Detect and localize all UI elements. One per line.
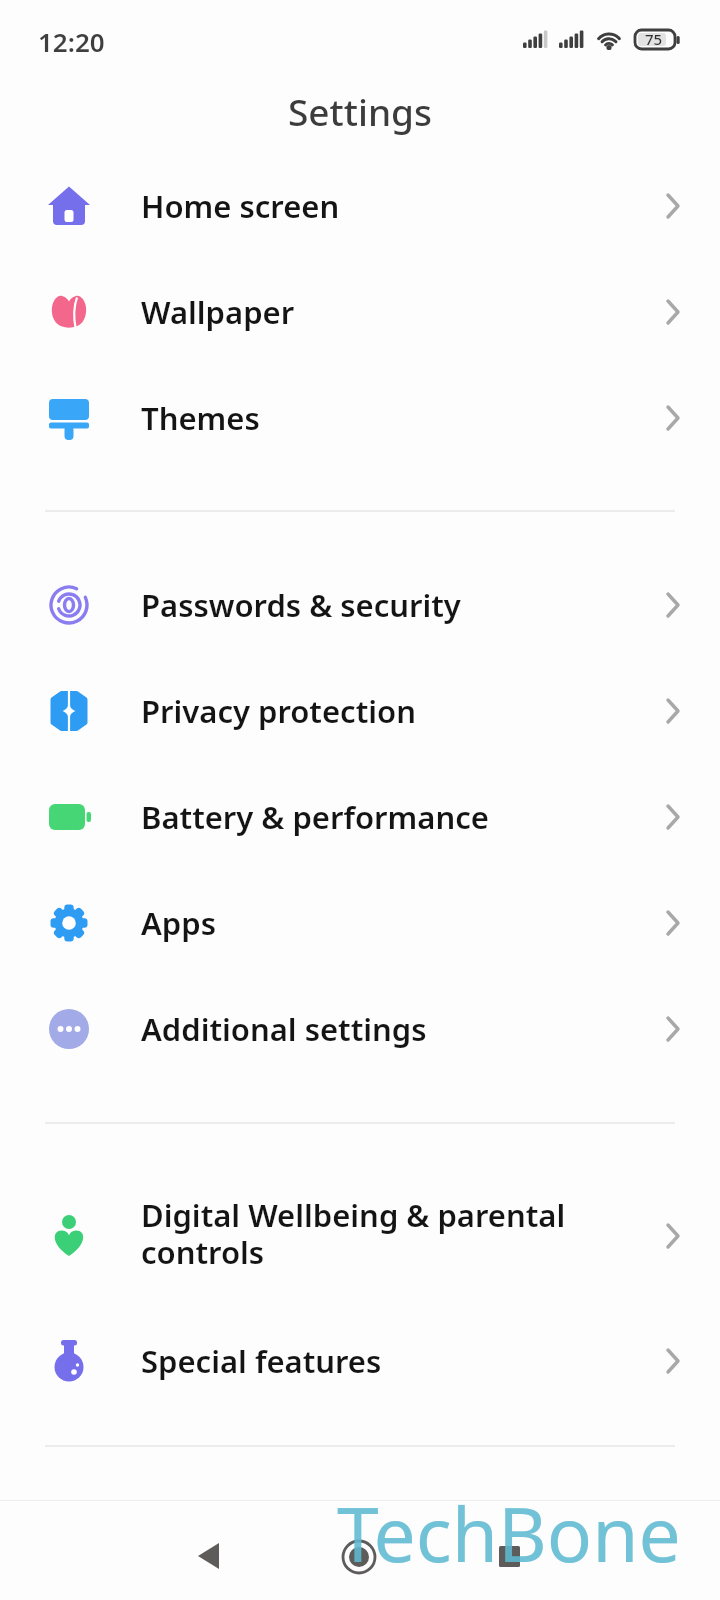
staticText: TechBone bbox=[337, 1482, 681, 1584]
staticText: 12:20 bbox=[38, 24, 105, 59]
button[interactable]: Apps bbox=[0, 870, 720, 976]
staticText: Settings bbox=[288, 86, 433, 136]
button[interactable] bbox=[440, 1510, 580, 1600]
button[interactable]: Digital Wellbeing & parental bbox=[0, 1166, 720, 1306]
staticText: 75 bbox=[645, 29, 663, 49]
button[interactable]: Privacy protection bbox=[0, 658, 720, 764]
button[interactable]: Home screen bbox=[0, 153, 720, 259]
staticText: Themes bbox=[141, 397, 260, 439]
staticText: Wallpaper bbox=[141, 291, 295, 333]
button[interactable]: Wallpaper bbox=[0, 259, 720, 365]
button[interactable] bbox=[140, 1510, 280, 1600]
button[interactable]: Additional settings bbox=[0, 976, 720, 1082]
staticText: Battery & performance bbox=[141, 796, 489, 838]
staticText: Digital Wellbeing & parental bbox=[141, 1194, 566, 1236]
staticText: Privacy protection bbox=[141, 690, 416, 732]
button[interactable]: Themes bbox=[0, 365, 720, 471]
staticText: Home screen bbox=[141, 185, 340, 227]
button[interactable] bbox=[290, 1510, 430, 1600]
button[interactable]: Special features bbox=[0, 1308, 720, 1414]
staticText: Special features bbox=[141, 1340, 382, 1382]
staticText: controls bbox=[141, 1231, 265, 1273]
button[interactable]: Passwords & security bbox=[0, 552, 720, 658]
staticText: Apps bbox=[141, 902, 216, 944]
staticText: Additional settings bbox=[141, 1008, 427, 1050]
staticText: Passwords & security bbox=[141, 584, 461, 626]
button[interactable]: Battery & performance bbox=[0, 764, 720, 870]
